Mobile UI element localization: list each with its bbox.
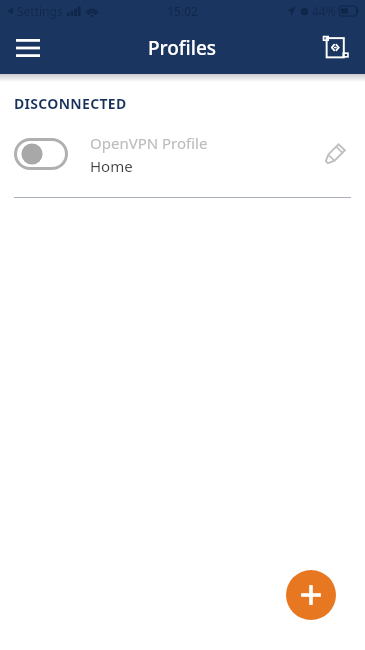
staticText: Profiles (148, 35, 217, 61)
staticText: Home (90, 156, 133, 176)
staticText: OpenVPN Profile (90, 133, 208, 153)
staticText: Settings (17, 3, 63, 19)
button[interactable]: Connect toggle, off (0, 125, 365, 183)
button[interactable]: Import profile (315, 27, 357, 69)
button[interactable]: Open navigation menu (8, 28, 48, 68)
staticText: 44% (312, 3, 336, 19)
button[interactable]: Connect toggle, off (14, 138, 68, 170)
staticText: DISCONNECTED (14, 94, 127, 113)
staticText: 15:02 (167, 3, 198, 19)
button[interactable]: Edit profile (313, 132, 357, 176)
button[interactable]: Add profile (286, 570, 336, 620)
